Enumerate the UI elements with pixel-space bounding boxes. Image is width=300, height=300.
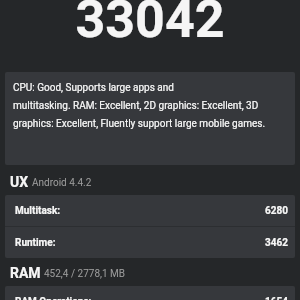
- staticText: Android 4.4.2: [32, 177, 92, 189]
- staticText: 3462: [265, 237, 288, 249]
- staticText: Runtime:: [15, 237, 56, 249]
- button[interactable]: Runtime:: [5, 227, 295, 258]
- staticText: 6280: [265, 205, 288, 217]
- button[interactable]: RAM Operations:: [5, 286, 295, 300]
- button[interactable]: CPU: Good, Supports large apps and multi…: [5, 72, 295, 165]
- button[interactable]: UX: [0, 174, 102, 195]
- staticText: 1654: [265, 296, 288, 300]
- staticText: 452,4 / 2778,1 MB: [44, 268, 126, 280]
- staticText: 33042: [75, 0, 225, 50]
- staticText: UX: [10, 174, 29, 190]
- staticText: Multitask:: [15, 205, 61, 217]
- staticText: RAM Operations:: [15, 296, 92, 300]
- staticText: CPU: Good, Supports large apps and multi…: [13, 82, 266, 130]
- button[interactable]: RAM: [0, 265, 136, 286]
- button[interactable]: Total score 33042: [0, 0, 300, 72]
- staticText: RAM: [10, 265, 41, 281]
- button[interactable]: Multitask:: [5, 195, 295, 226]
